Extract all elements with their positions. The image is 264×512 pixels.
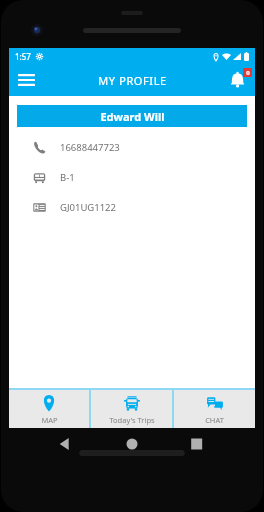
staticText: 16688447723 [60, 141, 120, 154]
staticText: GJ01UG1122 [60, 201, 116, 214]
staticText: Today's Trips [109, 415, 155, 425]
button[interactable]: CHAT [174, 390, 255, 428]
staticText: Edward Will [100, 109, 165, 124]
button[interactable]: Open navigation menu [9, 64, 43, 96]
staticText: 0 [246, 69, 250, 77]
button[interactable]: MAP [9, 390, 89, 428]
button[interactable]: B-1 [9, 168, 255, 186]
staticText: 1:57 [15, 51, 31, 62]
staticText: MY PROFILE [98, 73, 167, 88]
button[interactable]: Today's Trips [91, 390, 172, 428]
button[interactable]: Edward Will [17, 105, 247, 127]
staticText: MAP [41, 415, 58, 425]
staticText: B-1 [60, 171, 75, 184]
button[interactable]: Notifications [221, 64, 255, 96]
button[interactable]: 16688447723 [9, 138, 255, 156]
staticText: CHAT [205, 415, 224, 425]
button[interactable]: GJ01UG1122 [9, 198, 255, 216]
